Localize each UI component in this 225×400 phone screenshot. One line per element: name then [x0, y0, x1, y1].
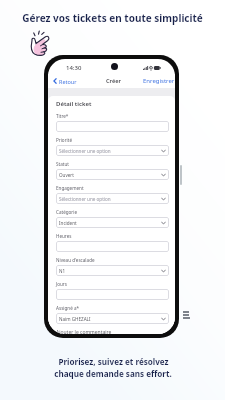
staticText: Jours [56, 281, 67, 287]
staticText: Naim GHEZALI [59, 316, 91, 322]
staticText: Retour [59, 78, 77, 85]
staticText: Gérez vos tickets en toute simplicité [22, 11, 203, 25]
staticText: Assigné a* [56, 305, 80, 311]
staticText: Priorité [56, 137, 72, 143]
button[interactable] [56, 121, 169, 132]
button[interactable]: N1 [56, 265, 169, 276]
staticText: Sélectionner une option [59, 148, 111, 154]
staticText: Priorisez, suivez et résolvez [58, 356, 169, 367]
button[interactable]: Ouvert [56, 169, 169, 180]
button[interactable]: Sélectionner une option [56, 193, 169, 204]
staticText: Niveau d'escalade [56, 257, 95, 263]
staticText: chaque demande sans effort. [54, 368, 172, 379]
button[interactable]: Incident [56, 217, 169, 228]
staticText: Catégorie [56, 209, 78, 215]
staticText: Incident [59, 220, 77, 226]
staticText: 14:30 [66, 64, 82, 72]
button[interactable] [56, 241, 169, 252]
button[interactable]: Enregistrer [139, 74, 175, 88]
button[interactable]: Naim GHEZALI [56, 313, 169, 324]
button[interactable]: Sélectionner une option [56, 145, 169, 156]
button[interactable] [56, 289, 169, 300]
staticText: Sélectionner une option [59, 196, 111, 202]
staticText: Créer [106, 77, 121, 85]
staticText: Ajouter le commentaire [56, 329, 112, 334]
staticText: Statut [56, 161, 69, 167]
staticText: N1 [59, 268, 66, 274]
staticText: Titre* [56, 113, 69, 119]
staticText: Ouvert [59, 172, 74, 178]
staticText: Détail ticket [56, 100, 92, 108]
staticText: Engagement [56, 185, 84, 191]
button[interactable]: Retour [48, 74, 81, 88]
staticText: Heures [56, 233, 72, 239]
staticText: Enregistrer [143, 77, 175, 85]
